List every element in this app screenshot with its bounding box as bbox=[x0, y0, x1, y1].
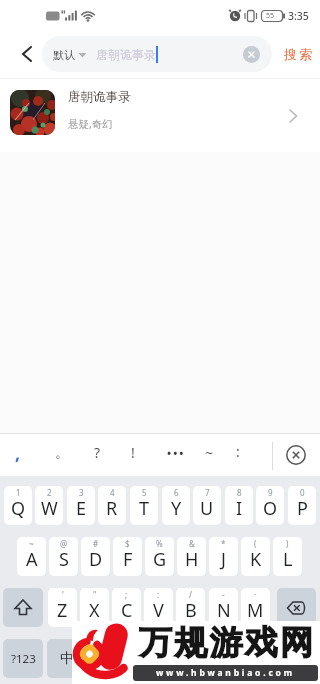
staticText: D bbox=[89, 547, 103, 572]
staticText: 默认 bbox=[53, 48, 75, 62]
staticText: T bbox=[139, 496, 150, 521]
staticText: % bbox=[156, 538, 163, 549]
button[interactable]: ~ bbox=[205, 443, 214, 462]
button[interactable]: 。 bbox=[55, 444, 69, 462]
staticText: W bbox=[41, 496, 58, 521]
staticText: $ bbox=[125, 538, 130, 549]
button[interactable]: : bbox=[236, 442, 240, 461]
staticText: ?123 bbox=[11, 651, 36, 667]
button[interactable]: : bbox=[144, 588, 173, 627]
staticText: ' bbox=[62, 589, 64, 600]
staticText: 万规游戏网 bbox=[138, 622, 314, 664]
button[interactable]: 3 bbox=[67, 486, 95, 525]
button[interactable]: ~ bbox=[17, 537, 46, 576]
staticText: U bbox=[200, 496, 214, 521]
staticText: ) bbox=[286, 538, 289, 549]
button[interactable]: @ bbox=[49, 537, 78, 576]
staticText: 2 bbox=[47, 487, 52, 498]
staticText: B bbox=[185, 598, 197, 623]
staticText: ; bbox=[125, 589, 128, 600]
button[interactable]: 默认 bbox=[42, 36, 272, 72]
button[interactable]: % bbox=[145, 537, 174, 576]
staticText: 。 bbox=[244, 648, 262, 671]
button[interactable]: 唐朝诡事录 bbox=[0, 79, 320, 152]
staticText: N bbox=[217, 598, 231, 623]
staticText: X bbox=[89, 598, 100, 623]
staticText: Q bbox=[11, 496, 26, 521]
button[interactable]: 0 bbox=[288, 486, 316, 525]
staticText: V bbox=[153, 598, 164, 623]
staticText: I bbox=[236, 496, 243, 521]
staticText: 唐朝诡事录 bbox=[96, 47, 156, 62]
staticText: H bbox=[185, 547, 199, 572]
button[interactable]: $ bbox=[113, 537, 142, 576]
staticText: M bbox=[247, 598, 264, 623]
button[interactable] bbox=[91, 639, 229, 678]
staticText: " bbox=[93, 589, 97, 600]
button[interactable]: · bbox=[241, 588, 270, 627]
button[interactable]: / bbox=[176, 588, 205, 627]
staticText: www.hbwanbiao.com bbox=[156, 667, 295, 679]
staticText: @ bbox=[60, 538, 68, 549]
staticText: ( bbox=[254, 538, 257, 549]
staticText: / bbox=[189, 589, 192, 600]
staticText: 8 bbox=[237, 487, 242, 498]
button[interactable]: " bbox=[80, 588, 109, 627]
button[interactable] bbox=[277, 639, 316, 678]
button[interactable] bbox=[243, 46, 260, 63]
button[interactable]: ; bbox=[112, 588, 141, 627]
button[interactable]: 4 bbox=[98, 486, 126, 525]
button[interactable]: , bbox=[15, 441, 21, 466]
button[interactable]: ' bbox=[48, 588, 77, 627]
button[interactable] bbox=[277, 588, 316, 627]
staticText: 悬疑,奇幻 bbox=[68, 117, 113, 131]
staticText: S bbox=[59, 547, 69, 572]
button[interactable]: & bbox=[177, 537, 206, 576]
button[interactable] bbox=[10, 38, 42, 70]
button[interactable]: 中 bbox=[47, 639, 87, 678]
button[interactable]: 9 bbox=[256, 486, 284, 525]
staticText: L bbox=[283, 547, 293, 572]
button[interactable]: - bbox=[209, 588, 238, 627]
button[interactable]: 搜索 bbox=[283, 46, 313, 62]
button[interactable]: ••• bbox=[167, 445, 186, 460]
button[interactable] bbox=[3, 588, 43, 627]
button[interactable]: 2 bbox=[35, 486, 63, 525]
button[interactable]: # bbox=[81, 537, 110, 576]
button[interactable]: 1 bbox=[4, 486, 32, 525]
staticText: 5 bbox=[142, 487, 147, 498]
staticText: 1 bbox=[16, 487, 21, 498]
button[interactable]: ! bbox=[131, 443, 135, 462]
staticText: 3:35 bbox=[288, 9, 309, 23]
staticText: 9 bbox=[268, 487, 273, 498]
staticText: G bbox=[153, 547, 167, 572]
staticText: O bbox=[263, 496, 278, 521]
button[interactable]: ( bbox=[241, 537, 270, 576]
staticText: 中 bbox=[60, 650, 74, 668]
button[interactable]: * bbox=[209, 537, 238, 576]
staticText: 55 bbox=[266, 11, 275, 21]
button[interactable]: 7 bbox=[193, 486, 221, 525]
staticText: · bbox=[254, 589, 257, 600]
button[interactable] bbox=[284, 443, 308, 467]
staticText: * bbox=[221, 538, 226, 549]
staticText: F bbox=[123, 547, 133, 572]
button[interactable]: 8 bbox=[225, 486, 253, 525]
staticText: K bbox=[250, 547, 262, 572]
button[interactable]: 6 bbox=[162, 486, 190, 525]
staticText: - bbox=[222, 589, 225, 600]
staticText: 4 bbox=[110, 487, 115, 498]
staticText: Z bbox=[57, 598, 68, 623]
button[interactable]: ) bbox=[273, 537, 302, 576]
staticText: J bbox=[221, 547, 226, 572]
staticText: 6 bbox=[174, 487, 179, 498]
staticText: : bbox=[157, 589, 160, 600]
button[interactable]: ?123 bbox=[3, 639, 43, 678]
staticText: 7 bbox=[205, 487, 210, 498]
button[interactable]: ? bbox=[94, 443, 101, 462]
button[interactable]: 5 bbox=[130, 486, 158, 525]
staticText: 搜索 bbox=[283, 46, 313, 62]
button[interactable]: 。 bbox=[233, 639, 273, 678]
staticText: 0 bbox=[300, 487, 305, 498]
staticText: R bbox=[106, 496, 118, 521]
